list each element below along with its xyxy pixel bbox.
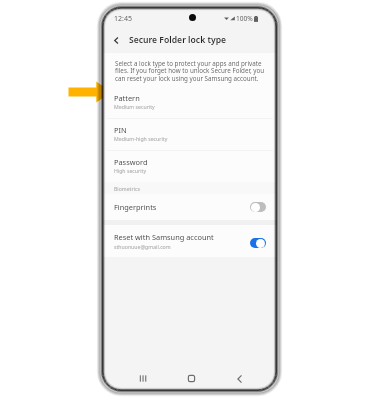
staticText: Biometrics [114, 185, 140, 192]
button[interactable]: Recents [118, 369, 167, 388]
button[interactable]: Fingerprints [103, 194, 277, 220]
staticText: Password [114, 157, 148, 167]
button[interactable]: Navigate up [103, 27, 129, 53]
button[interactable]: Reset with Samsung account [103, 225, 277, 257]
button[interactable]: PIN [103, 119, 277, 150]
staticText: Medium-high security [114, 135, 168, 142]
button[interactable]: Password [103, 151, 277, 182]
staticText: Reset with Samsung account [114, 232, 214, 242]
staticText: 12:45 [114, 14, 132, 24]
staticText: Fingerprints [114, 202, 157, 212]
staticText: Pattern [114, 93, 140, 103]
staticText: Medium security [114, 103, 155, 110]
button[interactable]: Pattern [103, 87, 277, 118]
staticText: sthuonuue@gmail.com [114, 243, 171, 250]
button[interactable]: Home [167, 369, 215, 388]
staticText: 100% [236, 14, 253, 23]
staticText: High security [114, 167, 147, 174]
staticText: PIN [114, 125, 127, 135]
staticText: Secure Folder lock type [129, 34, 227, 46]
staticText: Select a lock type to protect your apps … [115, 59, 272, 83]
button[interactable]: Back [215, 369, 263, 388]
